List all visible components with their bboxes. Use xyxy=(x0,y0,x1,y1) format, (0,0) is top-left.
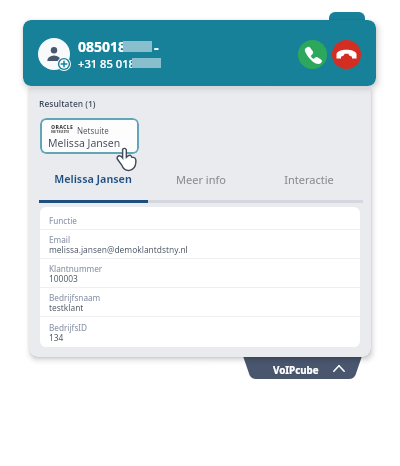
button[interactable]: Meer info xyxy=(147,164,255,194)
staticText: Functie xyxy=(49,215,77,226)
button[interactable]: Hang up xyxy=(332,40,361,69)
staticText: testklant xyxy=(49,302,84,313)
staticText: 100003 xyxy=(49,273,78,284)
staticText: VoIPcube xyxy=(273,364,319,377)
staticText: Bedrijfsnaam xyxy=(49,292,101,303)
button[interactable]: Call xyxy=(298,40,327,69)
button[interactable]: ORACLE xyxy=(40,118,139,154)
button[interactable]: VoIPcube xyxy=(243,356,362,379)
staticText: Klantnummer xyxy=(49,263,103,274)
button[interactable]: Interactie xyxy=(255,164,363,194)
staticText: 085018 xyxy=(78,37,127,56)
staticText: Netsuite xyxy=(77,125,109,136)
staticText: Meer info xyxy=(176,172,226,187)
staticText: Melissa Jansen xyxy=(54,172,132,186)
staticText: ORACLE xyxy=(51,123,74,130)
staticText: - xyxy=(154,37,159,57)
staticText: +31 85 018 xyxy=(78,56,136,71)
staticText: Email xyxy=(49,234,71,245)
staticText: NETSUITE xyxy=(51,129,70,134)
staticText: Resultaten (1) xyxy=(39,98,96,109)
staticText: 134 xyxy=(49,332,64,343)
button[interactable]: Melissa Jansen xyxy=(39,164,147,194)
staticText: BedrijfsID xyxy=(49,322,88,333)
staticText: Melissa Jansen xyxy=(48,136,121,150)
staticText: melissa.jansen@demoklantdstny.nl xyxy=(49,244,188,255)
staticText: Interactie xyxy=(284,172,334,187)
